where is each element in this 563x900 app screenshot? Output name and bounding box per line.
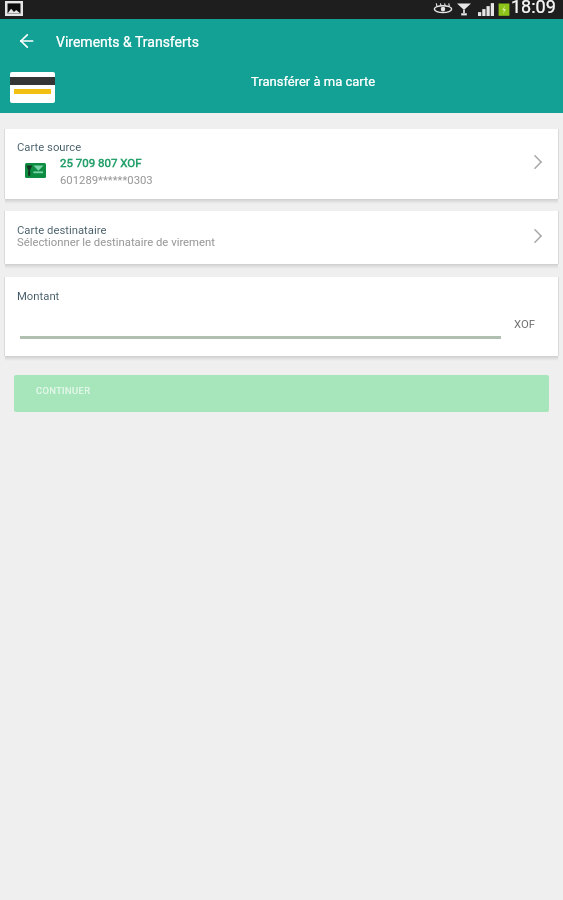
staticText: XOF	[514, 318, 535, 331]
staticText: 601289******0303	[60, 174, 153, 187]
staticText: Transférer à ma carte	[251, 74, 376, 89]
other: Open	[534, 155, 542, 169]
staticText: Montant	[17, 290, 60, 303]
other: Transfer to my card	[10, 72, 55, 103]
staticText: Sélectionner le destinataire de virement	[17, 236, 215, 249]
other: Open	[534, 229, 542, 243]
button[interactable]: Carte source	[5, 129, 558, 199]
staticText: 25 709 807 XOF	[60, 156, 142, 169]
button[interactable]: CONTINUER	[14, 375, 549, 412]
staticText: CONTINUER	[36, 385, 91, 396]
staticText: Virements & Transferts	[56, 34, 199, 50]
button[interactable]: Back	[13, 28, 39, 54]
staticText: 18:09	[511, 0, 556, 15]
staticText: Carte source	[17, 141, 82, 154]
staticText: Carte destinataire	[17, 224, 107, 237]
button[interactable]: Transfer to my card	[0, 65, 563, 113]
button[interactable]: Carte destinataire	[5, 211, 558, 264]
